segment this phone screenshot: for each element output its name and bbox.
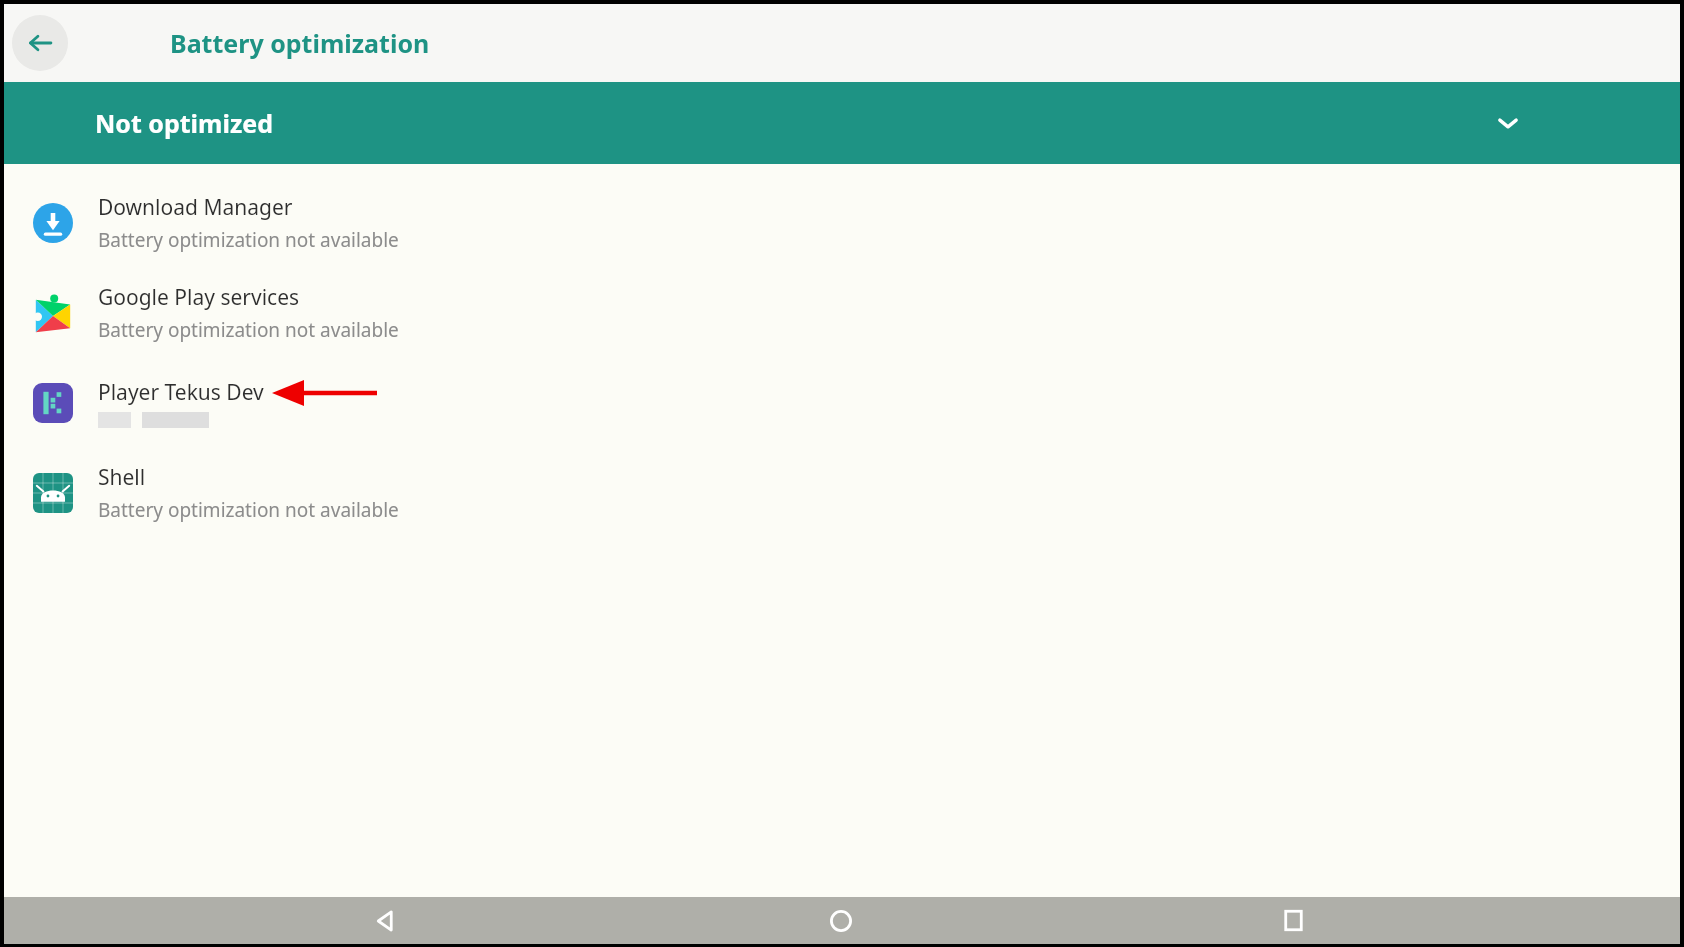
button[interactable]: Shell (4, 448, 1680, 538)
staticText: Shell (98, 463, 146, 492)
staticText: Battery optimization not available (98, 497, 399, 523)
staticText: Battery optimization not available (98, 227, 399, 253)
staticText: Google Play services (98, 283, 300, 312)
staticText: Battery optimization not available (98, 317, 399, 343)
staticText: Not optimized (95, 106, 273, 140)
other: Collapse section (1488, 103, 1528, 143)
button[interactable]: Back (12, 15, 68, 71)
button[interactable]: Google Play services (4, 268, 1680, 358)
staticText: Player Tekus Dev (98, 378, 264, 407)
staticText: Battery optimization (170, 26, 430, 60)
button[interactable]: Recent apps (1269, 897, 1317, 944)
button[interactable]: Not optimized (4, 82, 1680, 164)
button[interactable]: Home (817, 897, 865, 944)
button[interactable]: Back (361, 897, 409, 944)
button[interactable]: Player Tekus Dev (4, 358, 1680, 448)
button[interactable]: Download Manager (4, 178, 1680, 268)
staticText: Download Manager (98, 193, 293, 222)
